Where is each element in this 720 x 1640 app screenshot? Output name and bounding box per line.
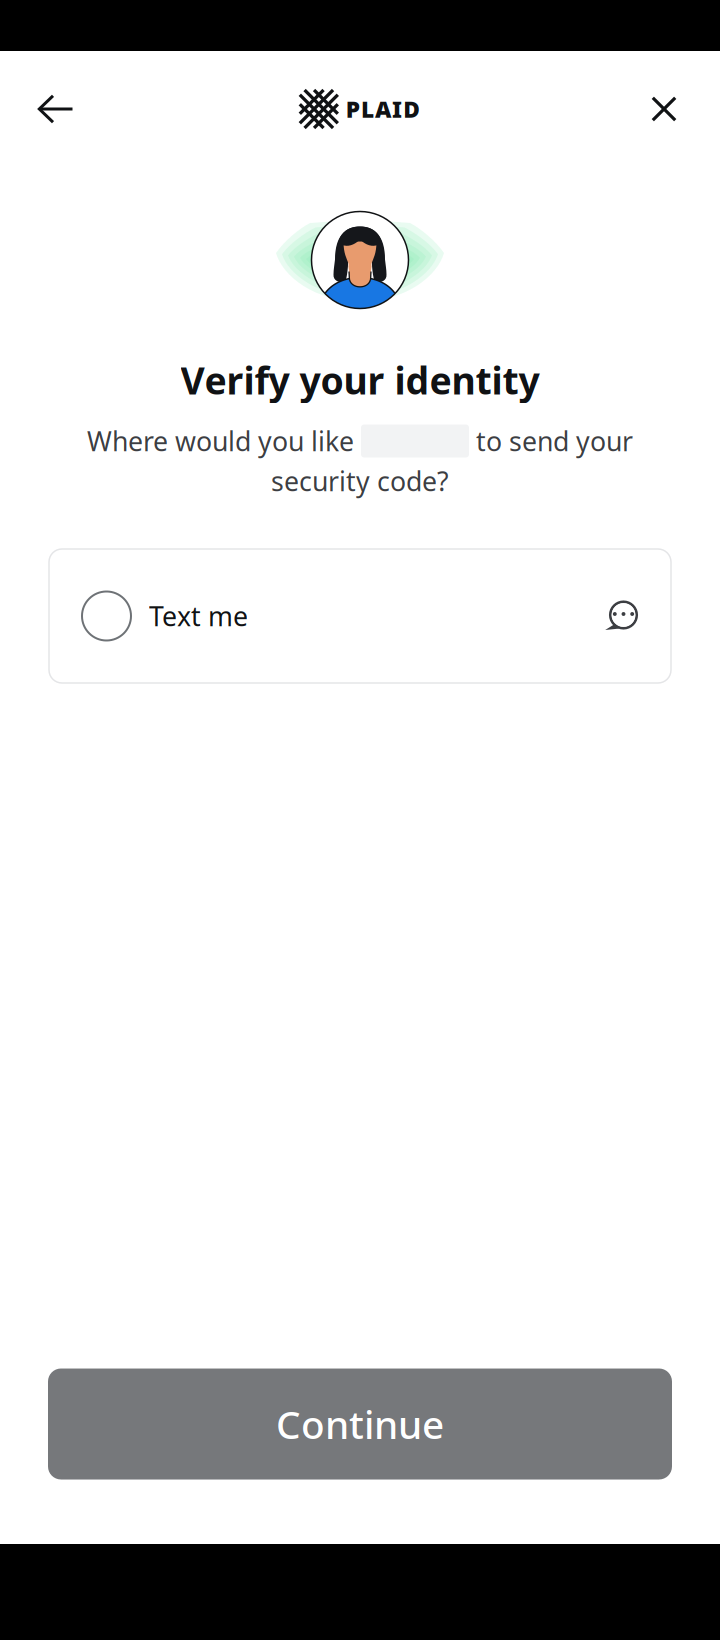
staticText: Text me: [149, 598, 248, 634]
staticText: Verify your identity: [180, 355, 539, 405]
staticText: to send your: [469, 423, 633, 459]
staticText: PLAID: [346, 94, 420, 124]
staticText: Continue: [276, 1398, 444, 1450]
button[interactable]: Text me: [49, 549, 671, 683]
staticText: security code?: [271, 463, 449, 499]
button[interactable]: Back: [20, 79, 92, 139]
button[interactable]: Close: [632, 79, 696, 139]
button[interactable]: Continue: [48, 1368, 672, 1479]
staticText: Where would you like: [87, 423, 361, 459]
